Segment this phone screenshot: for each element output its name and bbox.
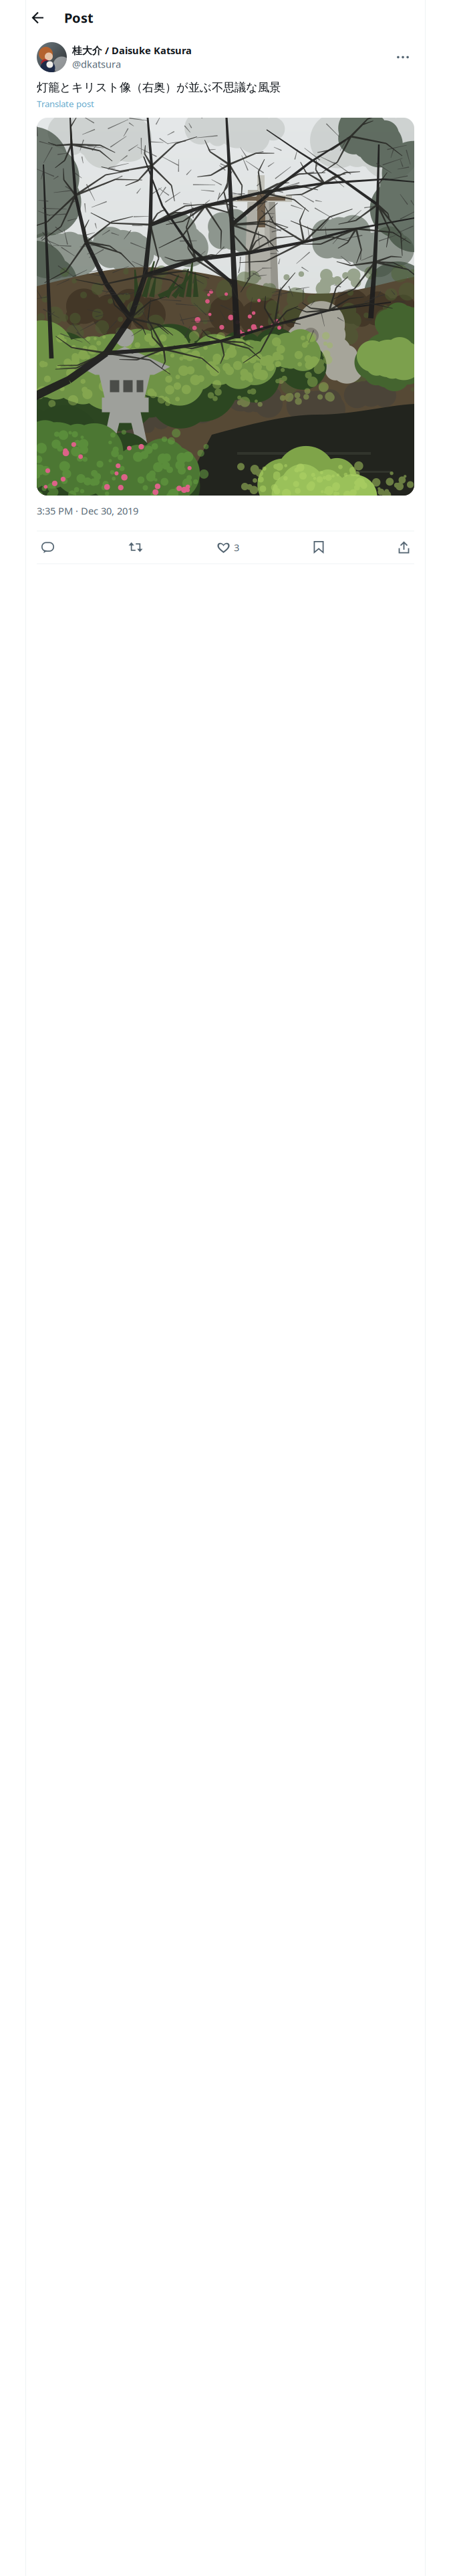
button[interactable]: Repost [124, 536, 147, 559]
staticText: 3 [234, 541, 239, 554]
button[interactable]: Bookmark [309, 536, 328, 559]
button[interactable]: Back [27, 6, 49, 29]
button[interactable]: Reply [37, 536, 59, 559]
button[interactable]: Share [394, 536, 414, 559]
button[interactable]: Like [212, 536, 244, 559]
button[interactable]: Translate post [37, 98, 94, 110]
staticText: Post [64, 9, 94, 27]
button[interactable]: More [392, 46, 414, 69]
staticText: Translate post [37, 98, 94, 110]
staticText: @dkatsura [72, 58, 121, 71]
staticText: 灯籠とキリスト像（右奥）が並ぶ不思議な風景 [37, 80, 281, 94]
staticText: 3:35 PM · Dec 30, 2019 [37, 504, 138, 517]
staticText: 桂大介 / Daisuke Katsura [72, 44, 192, 57]
